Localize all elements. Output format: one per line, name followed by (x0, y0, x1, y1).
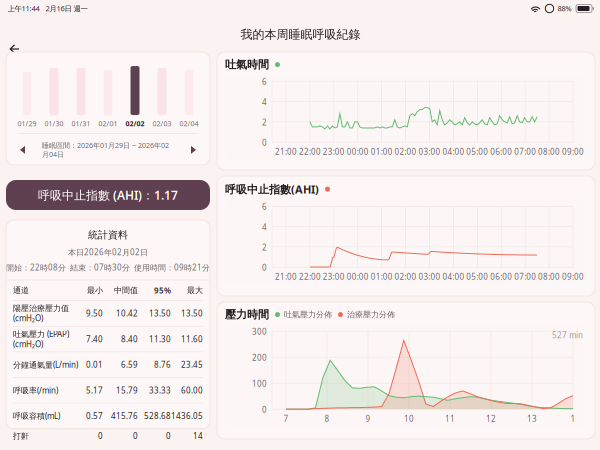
staticText: 09:00 (562, 146, 584, 157)
staticText: 13 (527, 413, 537, 424)
staticText: 23:00 (323, 272, 345, 282)
staticText: 1 (570, 413, 575, 424)
staticText: 壓力時間 (225, 308, 269, 321)
staticText: 06:00 (490, 272, 512, 282)
staticText: 02:00 (395, 146, 417, 157)
staticText: 04:00 (442, 272, 464, 282)
staticText: 11.30 (149, 334, 171, 344)
staticText: 0.57 (86, 411, 103, 421)
staticText: 2 (262, 242, 267, 253)
staticText: 528.68 (144, 411, 171, 421)
staticText: 睡眠區間：2026年01月29日 ~ 2026年02月04日 (42, 141, 169, 159)
staticText: 01:00 (371, 272, 393, 282)
staticText: 分鐘通氣量(L/min) (13, 359, 78, 370)
staticText: 我的本周睡眠呼吸紀錄 (240, 27, 360, 42)
staticText: 2 (262, 117, 267, 128)
staticText: 07:00 (514, 272, 536, 282)
staticText: 01/31 (71, 119, 90, 128)
staticText: 8.40 (121, 334, 138, 344)
staticText: 6.59 (121, 359, 138, 370)
staticText: 13.50 (149, 308, 171, 319)
staticText: 33.33 (149, 385, 171, 395)
staticText: 陽壓治療壓力值 (cmH₂O) (13, 303, 69, 323)
staticText: 7.40 (86, 334, 103, 344)
staticText: 0 (166, 431, 171, 441)
staticText: 最大 (187, 286, 203, 295)
button[interactable]: Previous week (16, 143, 30, 157)
staticText: 13.50 (181, 308, 203, 319)
staticText: 10 (404, 413, 414, 424)
staticText: 0 (262, 137, 267, 148)
staticText: 22:00 (299, 146, 321, 157)
staticText: 02/04 (179, 119, 198, 128)
staticText: 最小 (87, 286, 103, 295)
staticText: 6 (262, 76, 267, 87)
staticText: 02/01 (98, 119, 117, 128)
button[interactable]: 呼吸中止指數 (AHI)：1.17 (6, 180, 210, 210)
staticText: 04:00 (442, 146, 464, 157)
staticText: 0 (262, 263, 267, 273)
staticText: 01:00 (371, 146, 393, 157)
staticText: 415.76 (111, 411, 138, 421)
staticText: 吐氣壓力分佈 (284, 310, 332, 319)
staticText: 6 (262, 202, 267, 212)
staticText: 治療壓力分佈 (347, 310, 395, 319)
staticText: 5.17 (86, 385, 103, 395)
staticText: 200 (252, 352, 267, 363)
staticText: 統計資料 (88, 229, 128, 241)
staticText: 08:00 (538, 272, 560, 282)
button[interactable]: Next week (186, 143, 200, 157)
staticText: 4 (262, 97, 267, 107)
staticText: 06:00 (490, 146, 512, 157)
staticText: 9 (365, 413, 370, 424)
staticText: 23.45 (181, 359, 203, 370)
staticText: 23:00 (323, 146, 345, 157)
staticText: 吐氣壓力 (EPAP) (cmH₂O) (13, 329, 69, 349)
staticText: 1436.05 (171, 411, 203, 421)
staticText: 07:00 (514, 146, 536, 157)
staticText: 8 (324, 413, 329, 424)
staticText: 0 (262, 404, 267, 415)
staticText: 0.01 (86, 359, 103, 370)
staticText: 通道 (13, 286, 29, 295)
staticText: 上午11:44 2月16日 週一 (7, 4, 87, 13)
staticText: 02/02 (125, 119, 144, 128)
staticText: 12 (486, 413, 496, 424)
staticText: 05:00 (466, 146, 488, 157)
staticText: 95% (154, 285, 171, 296)
staticText: 00:00 (347, 146, 369, 157)
staticText: 02:00 (395, 272, 417, 282)
staticText: 呼吸率(/min) (13, 385, 58, 395)
staticText: 吐氣時間 (225, 58, 269, 71)
staticText: 21:00 (275, 272, 297, 282)
staticText: 60.00 (181, 385, 203, 395)
button[interactable]: Back (1, 36, 27, 62)
staticText: 88% (557, 4, 571, 13)
staticText: 打鼾 (13, 431, 29, 441)
staticText: 4 (262, 222, 267, 232)
staticText: 03:00 (418, 146, 440, 157)
staticText: 15.79 (116, 385, 138, 395)
staticText: 09:00 (562, 272, 584, 282)
staticText: 0 (98, 431, 103, 441)
staticText: 05:00 (466, 272, 488, 282)
staticText: 10.42 (116, 308, 138, 319)
staticText: 300 (252, 326, 267, 337)
staticText: 呼吸中止指數 (AHI)：1.17 (38, 187, 178, 203)
staticText: 02/03 (152, 119, 171, 128)
staticText: 08:00 (538, 146, 560, 157)
staticText: 01/29 (17, 119, 36, 128)
staticText: 01/30 (44, 119, 63, 128)
staticText: 中間值 (114, 286, 138, 295)
staticText: 開始：22時08分 結束：07時30分 使用時間：09時21分 (6, 262, 210, 273)
staticText: 03:00 (418, 272, 440, 282)
staticText: 11 (445, 413, 455, 424)
staticText: 7 (283, 413, 288, 424)
staticText: 8.76 (154, 359, 171, 370)
staticText: 21:00 (275, 146, 297, 157)
staticText: 呼吸中止指數(AHI) (225, 182, 319, 196)
staticText: 100 (252, 378, 267, 389)
staticText: 9.50 (86, 308, 103, 319)
staticText: 527 min (552, 330, 583, 340)
staticText: 22:00 (299, 272, 321, 282)
